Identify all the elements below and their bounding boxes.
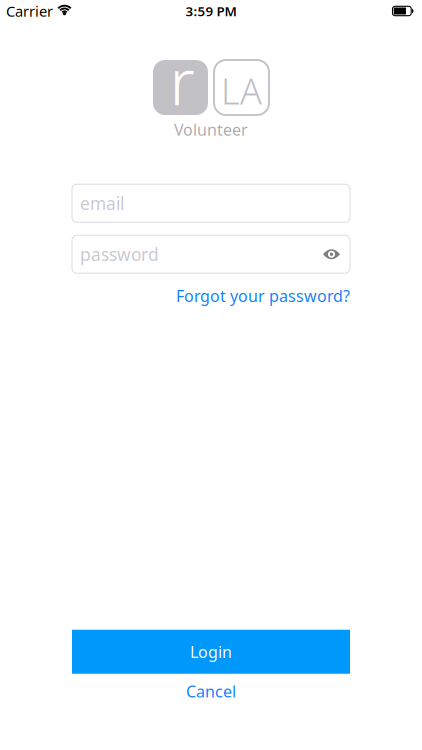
staticText: 3:59 PM [185,2,236,20]
staticText: email [80,192,124,215]
button[interactable]: password [72,235,350,273]
button[interactable]: Show password [323,249,350,260]
staticText: LA [221,67,262,114]
staticText: Cancel [186,681,236,702]
button[interactable]: email [72,184,350,222]
staticText: r [169,38,194,123]
staticText: Login [190,641,232,662]
button[interactable]: Forgot your password? [176,285,350,306]
staticText: Carrier [6,1,53,21]
button[interactable]: Cancel [186,681,236,702]
staticText: Forgot your password? [176,285,350,306]
staticText: Volunteer [174,119,248,140]
staticText: password [80,243,159,266]
button[interactable]: Login [72,630,350,674]
